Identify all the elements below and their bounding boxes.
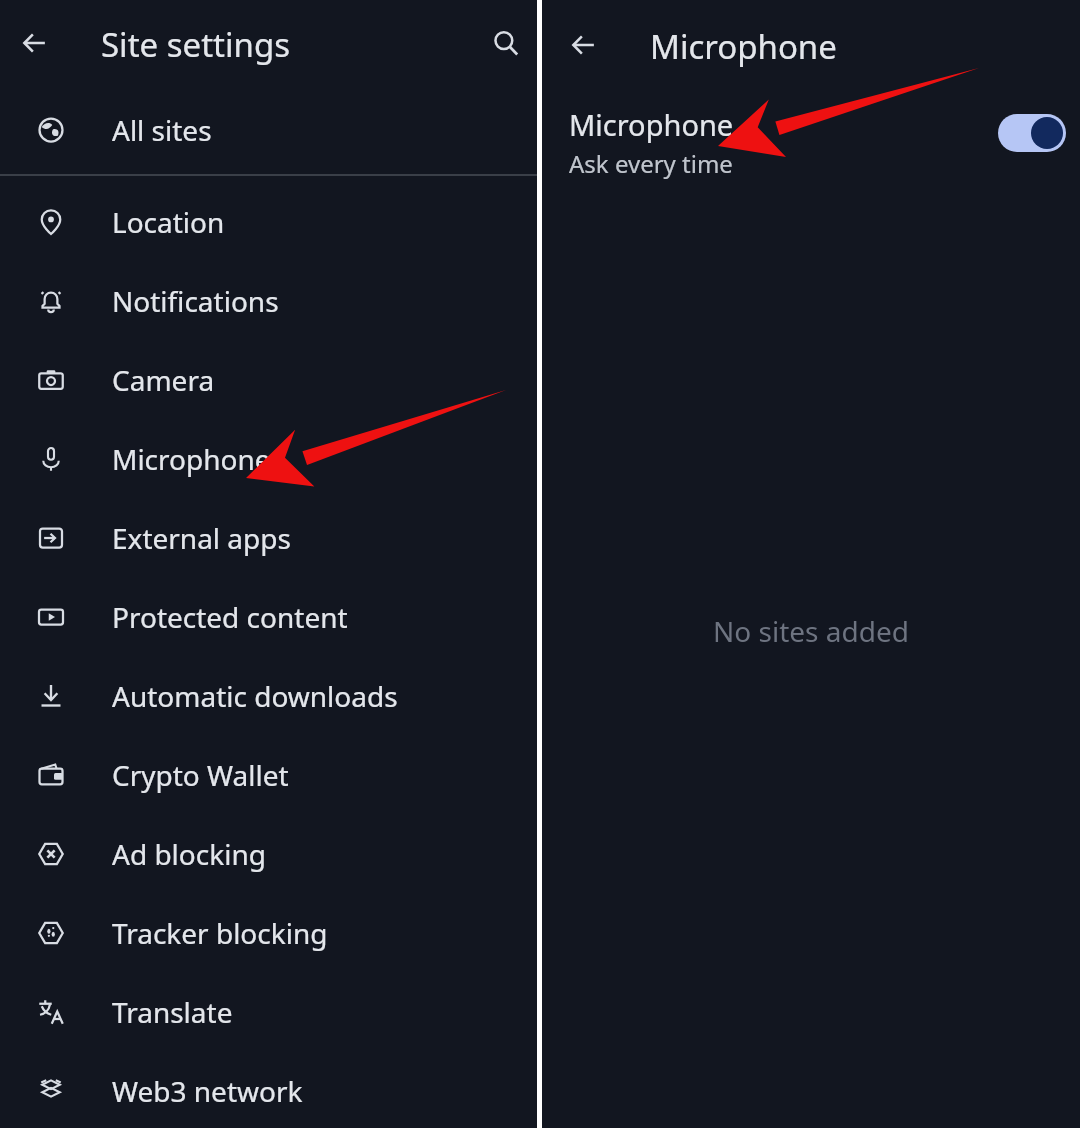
button[interactable]: Automatic downloads (0, 656, 537, 735)
staticText: Protected content (112, 598, 348, 636)
staticText: Ad blocking (112, 835, 266, 873)
button[interactable]: Crypto Wallet (0, 735, 537, 814)
staticText: No sites added (542, 612, 1080, 650)
staticText: External apps (112, 519, 291, 557)
staticText: Automatic downloads (112, 677, 398, 715)
staticText: Tracker blocking (112, 914, 328, 952)
button[interactable]: Location (0, 182, 537, 261)
staticText: Microphone (650, 24, 837, 69)
staticText: Translate (112, 993, 233, 1031)
staticText: Ask every time (569, 147, 733, 180)
button[interactable]: Search (480, 17, 532, 69)
button[interactable]: Protected content (0, 577, 537, 656)
button[interactable]: All sites (0, 86, 537, 174)
staticText: Notifications (112, 282, 279, 320)
button[interactable]: Camera (0, 340, 537, 419)
button[interactable]: Microphone (0, 419, 537, 498)
button[interactable]: Ad blocking (0, 814, 537, 893)
staticText: Microphone (569, 105, 734, 144)
staticText: All sites (112, 111, 212, 149)
button[interactable]: Tracker blocking (0, 893, 537, 972)
button[interactable]: Microphone (542, 92, 1080, 188)
button[interactable]: Back (10, 18, 60, 68)
button[interactable]: Translate (0, 972, 537, 1051)
button[interactable]: Notifications (0, 261, 537, 340)
button[interactable]: External apps (0, 498, 537, 577)
staticText: Camera (112, 361, 215, 399)
button[interactable]: Back (559, 20, 609, 70)
staticText: Web3 network (112, 1072, 303, 1110)
staticText: Microphone (112, 440, 271, 478)
staticText: Crypto Wallet (112, 756, 289, 794)
staticText: Location (112, 203, 225, 241)
button[interactable]: Web3 network (0, 1051, 537, 1128)
staticText: Site settings (101, 22, 290, 67)
